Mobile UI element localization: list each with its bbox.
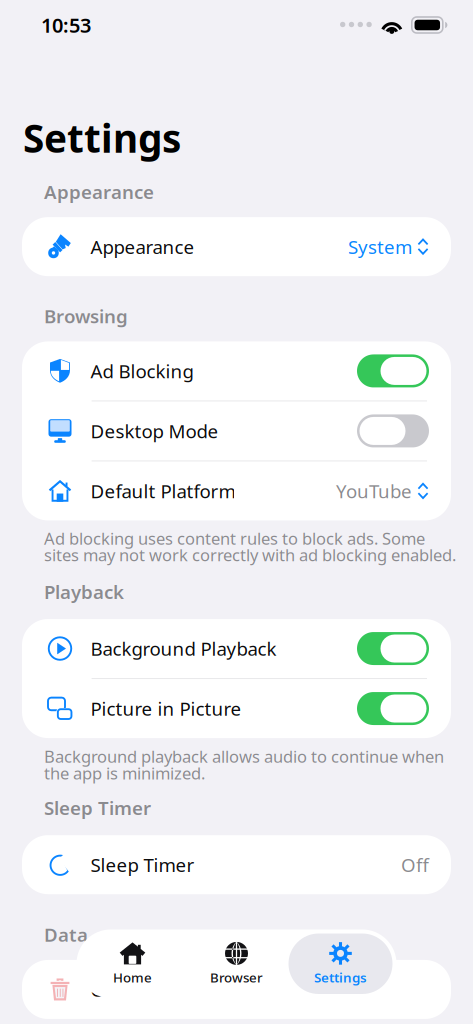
button[interactable]: Browser [184, 933, 288, 994]
staticText: Settings [314, 968, 367, 986]
button[interactable]: Home [80, 933, 184, 994]
staticText: Browser [210, 968, 263, 986]
button[interactable]: Appearance [22, 217, 451, 276]
staticText: Ad blocking uses content rules to block … [44, 530, 456, 563]
staticText: Browsing [44, 304, 128, 328]
button[interactable]: Picture in Picture [22, 679, 451, 738]
staticText: Picture in Picture [90, 696, 241, 721]
staticText: Home [113, 968, 152, 986]
staticText: Background Playback [90, 636, 276, 661]
button[interactable]: Ad Blocking [22, 341, 451, 400]
staticText: Settings [23, 112, 181, 163]
staticText: Background playback allows audio to cont… [44, 748, 444, 781]
staticText: Sleep Timer [44, 795, 151, 820]
button[interactable]: Clear Cache [22, 960, 451, 1019]
staticText: Appearance [90, 234, 194, 259]
staticText: Appearance [44, 179, 154, 204]
button[interactable]: Desktop Mode [22, 401, 451, 460]
staticText: 10:53 [41, 12, 91, 38]
staticText: Data [44, 922, 88, 947]
staticText: YouTube [336, 478, 412, 503]
button[interactable]: Background Playback [22, 619, 451, 678]
staticText: Sleep Timer [90, 852, 194, 877]
staticText: System [348, 234, 412, 259]
staticText: Clear Cache [90, 977, 195, 1002]
staticText: Default Platform [90, 478, 235, 503]
button[interactable]: Sleep Timer [22, 835, 451, 894]
staticText: Ad Blocking [90, 358, 193, 383]
staticText: Playback [44, 579, 124, 604]
staticText: Off [401, 852, 429, 877]
button[interactable]: Settings [288, 933, 392, 994]
button[interactable]: Default Platform [22, 461, 451, 520]
staticText: Desktop Mode [90, 418, 218, 443]
